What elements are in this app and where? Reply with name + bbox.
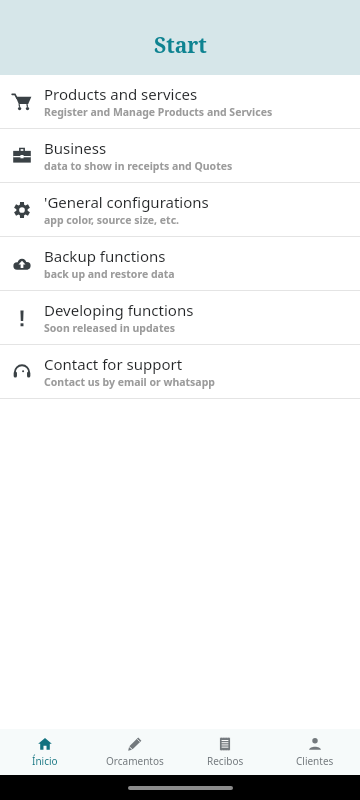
button[interactable]: Products and services	[0, 75, 360, 128]
staticText: Backup functions	[44, 246, 166, 266]
button[interactable]: Orcamentos	[90, 729, 180, 775]
staticText: Start	[154, 31, 207, 60]
button[interactable]: Recibos	[180, 729, 270, 775]
button[interactable]: Ínicio	[0, 729, 90, 775]
button[interactable]: 'General configurations	[0, 183, 360, 236]
staticText: back up and restore data	[44, 267, 175, 281]
button[interactable]: Clientes	[270, 729, 360, 775]
staticText: app color, source size, etc.	[44, 213, 180, 227]
button[interactable]: Business	[0, 129, 360, 182]
staticText: Recibos	[207, 754, 244, 768]
button[interactable]: Contact for support	[0, 345, 360, 398]
staticText: Contact us by email or whatsapp	[44, 375, 215, 389]
staticText: Clientes	[296, 754, 334, 768]
staticText: Soon released in updates	[44, 321, 175, 335]
staticText: 'General configurations	[44, 192, 209, 212]
staticText: Ínicio	[32, 754, 58, 768]
staticText: data to show in receipts and Quotes	[44, 159, 233, 173]
staticText: Business	[44, 138, 107, 158]
staticText: Contact for support	[44, 354, 183, 374]
staticText: Register and Manage Products and Service…	[44, 105, 273, 119]
staticText: Developing functions	[44, 300, 194, 320]
staticText: Products and services	[44, 84, 198, 104]
button[interactable]: Backup functions	[0, 237, 360, 290]
staticText: Orcamentos	[106, 754, 164, 768]
button[interactable]: Developing functions	[0, 291, 360, 344]
